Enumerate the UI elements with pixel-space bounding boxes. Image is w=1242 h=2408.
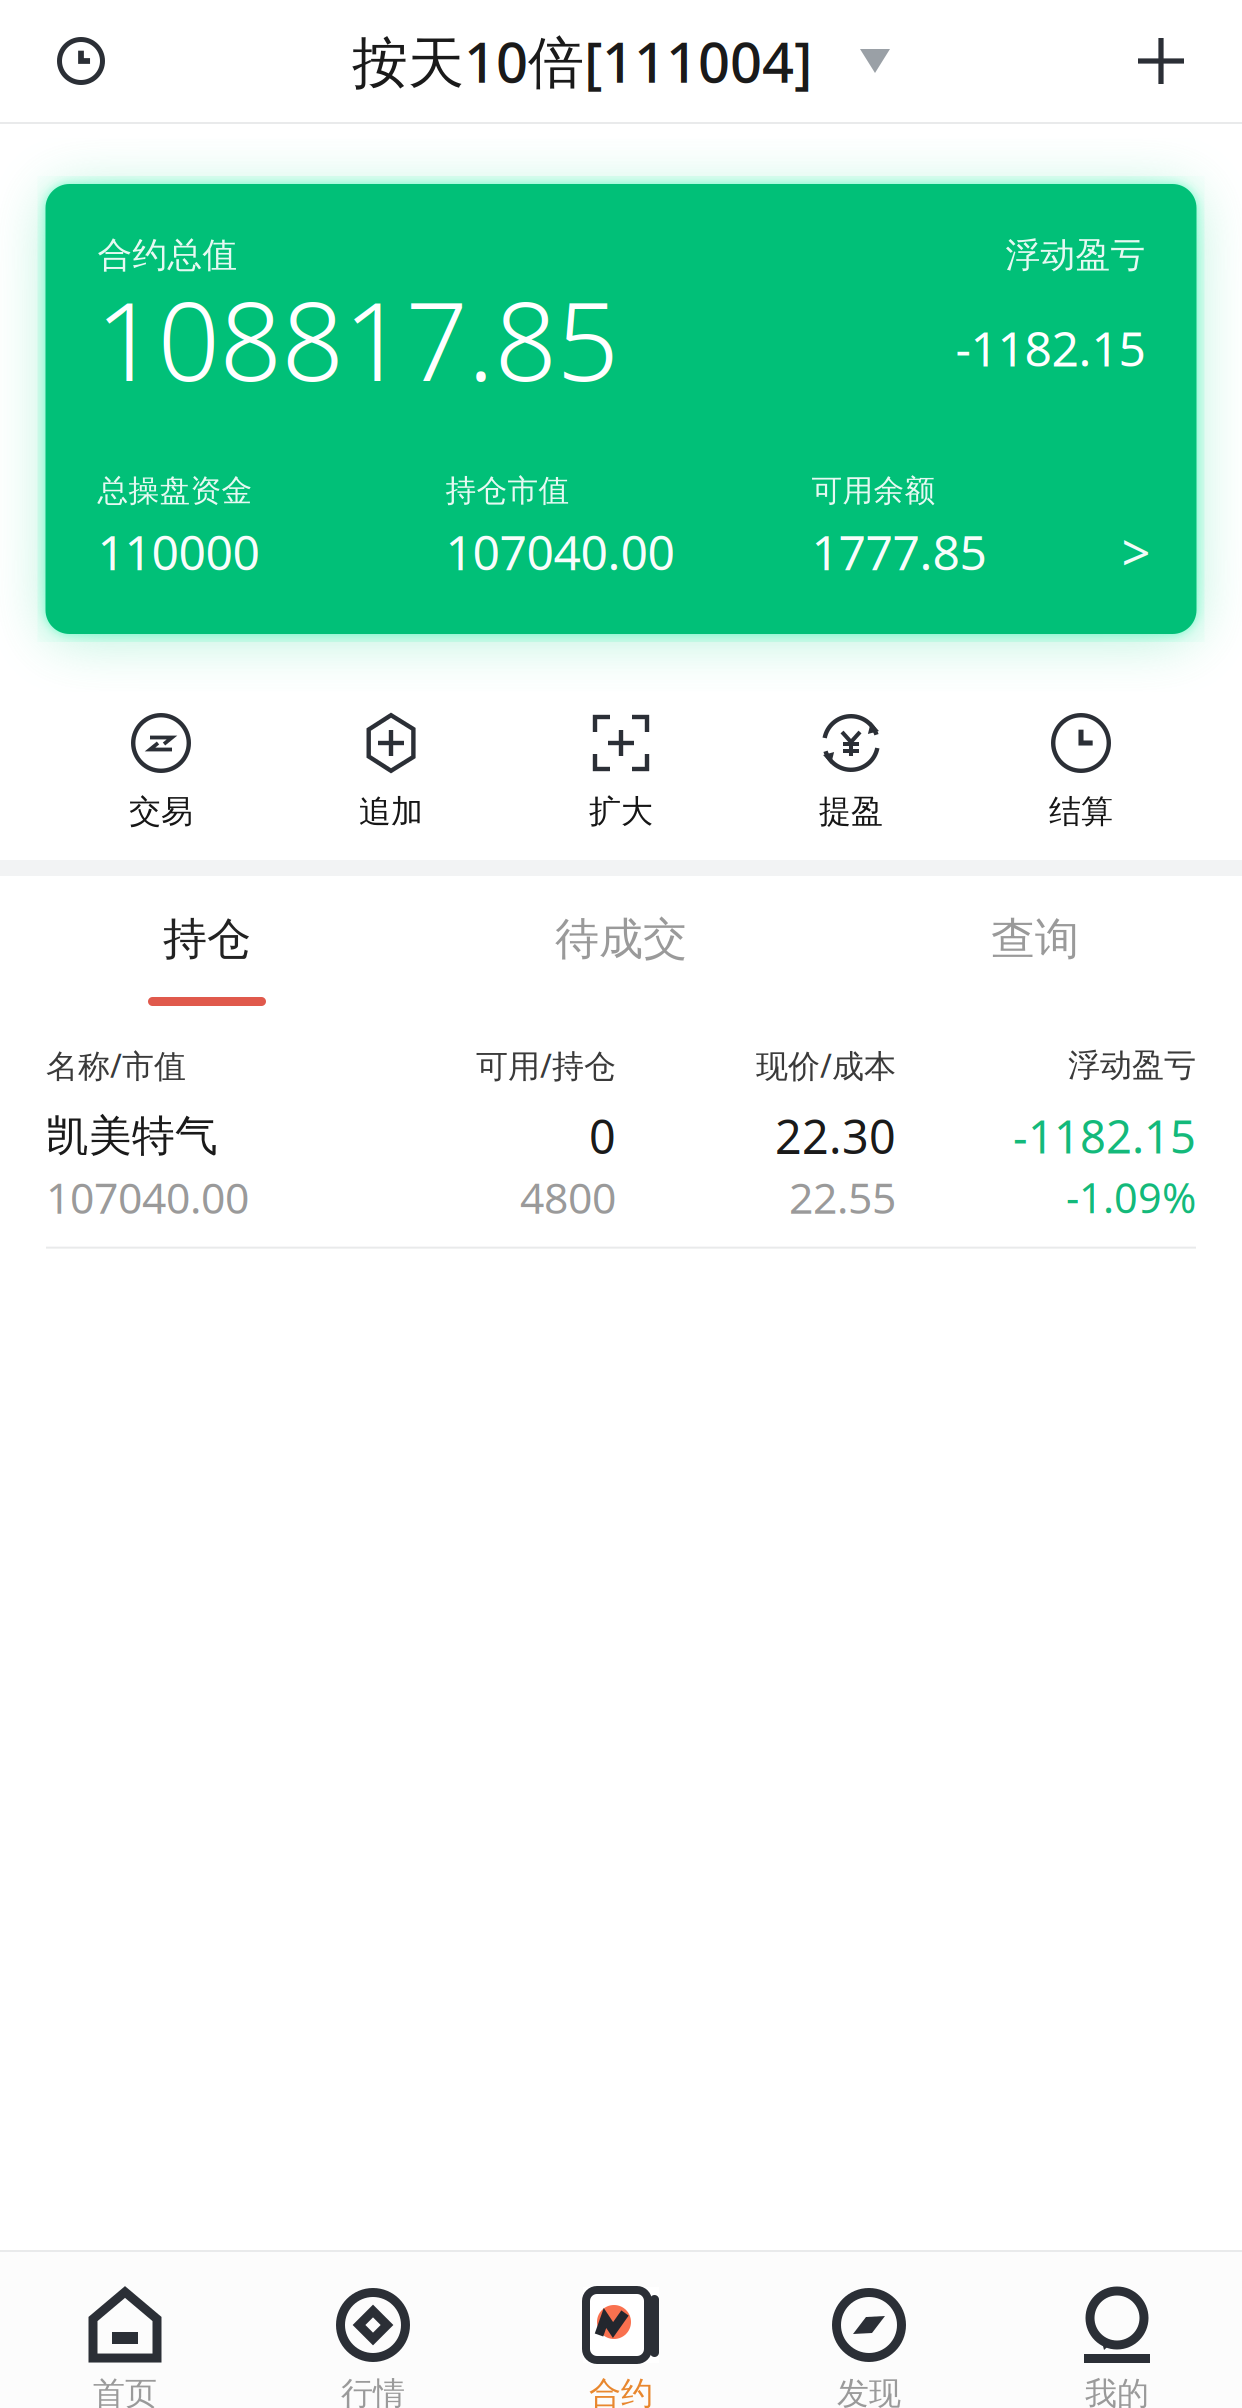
button[interactable]: History — [0, 0, 162, 122]
staticText: -1182.15 — [955, 316, 1145, 380]
staticText: 22.55 — [789, 1169, 896, 1226]
button[interactable]: 按天10倍[111004] — [352, 0, 890, 122]
staticText: 合约 — [589, 2374, 653, 2408]
staticText: 凯美特气 — [46, 1110, 218, 1162]
button[interactable]: Add — [1078, 0, 1242, 122]
staticText: 可用余额 — [811, 472, 935, 510]
button[interactable]: 交易 — [46, 713, 276, 847]
button[interactable]: 结算 — [966, 713, 1196, 847]
staticText: 待成交 — [555, 912, 687, 966]
button[interactable]: 扩大 — [506, 713, 736, 847]
staticText: 我的 — [1085, 2374, 1149, 2408]
button[interactable]: 持仓 — [0, 876, 414, 1016]
staticText: 110000 — [97, 520, 259, 583]
button[interactable]: 待成交 — [414, 876, 828, 1016]
staticText: 行情 — [341, 2374, 405, 2408]
button[interactable]: 提盈 — [736, 713, 966, 847]
staticText: 追加 — [359, 792, 423, 831]
button[interactable]: 我的 — [993, 2252, 1241, 2408]
staticText: 107040.00 — [445, 520, 674, 583]
staticText: 107040.00 — [46, 1169, 249, 1226]
staticText: 查询 — [991, 912, 1079, 966]
staticText: 1777.85 — [811, 520, 986, 583]
staticText: > — [1121, 518, 1150, 585]
staticText: 扩大 — [589, 792, 653, 831]
staticText: 现价/成本 — [756, 1044, 896, 1086]
staticText: 结算 — [1049, 792, 1113, 831]
staticText: 108817.85 — [95, 266, 618, 411]
button[interactable]: 查询 — [828, 876, 1242, 1016]
button[interactable]: 追加 — [276, 713, 506, 847]
staticText: 可用/持仓 — [476, 1044, 616, 1086]
staticText: 4800 — [520, 1169, 616, 1226]
staticText: 提盈 — [819, 792, 883, 831]
staticText: 浮动盈亏 — [1005, 234, 1145, 277]
staticText: 合约总值 — [97, 234, 237, 277]
staticText: 浮动盈亏 — [1068, 1046, 1196, 1085]
button[interactable]: 合约总值 — [45, 184, 1196, 634]
staticText: 22.30 — [775, 1105, 896, 1167]
staticText: -1182.15 — [1013, 1106, 1196, 1166]
button[interactable]: 发现 — [745, 2252, 993, 2408]
staticText: 首页 — [93, 2374, 157, 2408]
staticText: 0 — [589, 1105, 616, 1167]
staticText: 发现 — [837, 2374, 901, 2408]
button[interactable]: 合约 — [497, 2252, 745, 2408]
staticText: 总操盘资金 — [97, 472, 252, 510]
staticText: 交易 — [129, 792, 193, 831]
staticText: -1.09% — [1066, 1170, 1196, 1225]
staticText: 按天10倍[111004] — [352, 24, 812, 98]
button[interactable]: 行情 — [249, 2252, 497, 2408]
button[interactable]: 凯美特气 — [0, 1098, 1242, 1247]
staticText: 名称/市值 — [46, 1044, 186, 1086]
button[interactable]: 首页 — [1, 2252, 249, 2408]
staticText: 持仓市值 — [445, 472, 569, 510]
staticText: 持仓 — [163, 912, 251, 966]
